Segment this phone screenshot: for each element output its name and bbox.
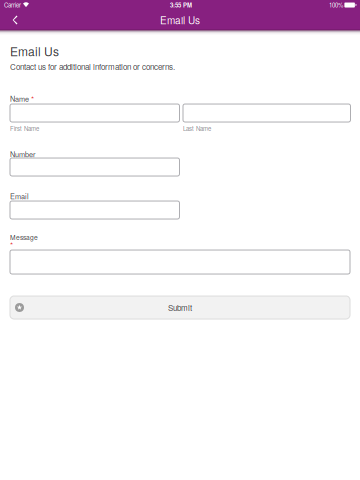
staticText: Name [10,93,29,104]
staticText: Email [10,191,29,201]
button[interactable]: Back [0,10,44,30]
button[interactable]: Submit [10,296,350,319]
staticText: 100% [329,1,343,9]
staticText: Email Us [10,42,59,60]
staticText: * [31,93,34,105]
staticText: Contact us for additional information or… [10,61,175,72]
staticText: Number [10,149,35,159]
staticText: Carrier [4,1,21,9]
staticText: First Name [10,124,39,133]
staticText: 3:55 PM [170,1,192,9]
staticText: * [10,239,13,251]
staticText: Submit [168,302,192,313]
staticText: Email Us [160,13,200,27]
staticText: Message [10,232,38,242]
staticText: Last Name [183,124,211,133]
